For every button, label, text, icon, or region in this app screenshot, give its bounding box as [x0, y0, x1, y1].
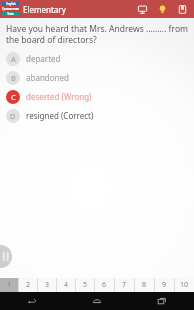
staticText: 9: [162, 280, 167, 290]
staticText: Have you heard that Mrs. Andrews .......…: [6, 23, 189, 45]
button[interactable]: Discussion: [134, 1, 150, 17]
staticText: 4: [64, 280, 69, 290]
button[interactable]: B: [6, 68, 189, 87]
button[interactable]: Hint: [154, 1, 170, 17]
button[interactable]: Back: [0, 292, 64, 310]
button[interactable]: 4: [57, 278, 75, 292]
staticText: 1: [7, 280, 12, 290]
staticText: departed: [26, 53, 61, 64]
button[interactable]: 8: [135, 278, 154, 292]
staticText: 10: [180, 280, 189, 290]
staticText: Tests: [7, 12, 14, 16]
button[interactable]: Bookmark: [174, 1, 190, 17]
staticText: 5: [83, 280, 88, 290]
button[interactable]: 6: [95, 278, 114, 292]
staticText: D: [10, 111, 16, 121]
button[interactable]: English Grammar Tests: [2, 2, 19, 17]
button[interactable]: 7: [115, 278, 134, 292]
button[interactable]: 9: [155, 278, 174, 292]
button[interactable]: Recents: [129, 292, 194, 310]
staticText: English: [6, 2, 16, 6]
staticText: 2: [26, 280, 31, 290]
button[interactable]: D: [6, 106, 189, 125]
staticText: 3: [45, 280, 50, 290]
button[interactable]: A: [6, 49, 189, 68]
staticText: abandoned: [26, 72, 69, 83]
button[interactable]: Home: [64, 292, 129, 310]
button[interactable]: Pause: [0, 245, 12, 268]
button[interactable]: C: [6, 87, 189, 106]
staticText: 7: [122, 280, 127, 290]
button[interactable]: 10: [175, 278, 194, 292]
staticText: resigned (Correct): [26, 110, 94, 121]
button[interactable]: 5: [76, 278, 94, 292]
staticText: B: [11, 73, 16, 83]
button[interactable]: 1: [0, 278, 18, 292]
staticText: A: [11, 54, 16, 64]
staticText: 8: [142, 280, 147, 290]
staticText: Elementary: [23, 4, 66, 15]
staticText: 6: [102, 280, 107, 290]
staticText: Грамматика: [2, 7, 19, 11]
button[interactable]: 3: [38, 278, 56, 292]
staticText: C: [11, 92, 16, 102]
button[interactable]: 2: [19, 278, 37, 292]
staticText: deserted (Wrong): [26, 91, 92, 102]
